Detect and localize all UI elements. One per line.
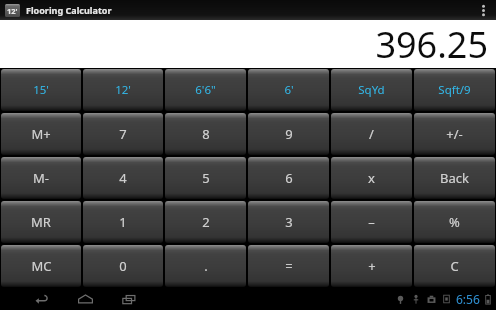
- button[interactable]: 7: [83, 113, 163, 155]
- staticText: 2: [202, 213, 210, 231]
- button[interactable]: 15': [1, 69, 81, 111]
- staticText: 0: [119, 257, 127, 275]
- staticText: Back: [440, 169, 469, 187]
- button[interactable]: –: [331, 201, 412, 243]
- button[interactable]: M+: [1, 113, 81, 155]
- staticText: 6:56: [456, 291, 480, 307]
- staticText: x: [368, 169, 375, 187]
- staticText: 12': [7, 6, 18, 16]
- staticText: =: [285, 257, 293, 275]
- staticText: 15': [33, 82, 49, 98]
- button[interactable]: SqYd: [331, 69, 412, 111]
- button[interactable]: +: [331, 245, 412, 287]
- button[interactable]: 5: [165, 157, 246, 199]
- button[interactable]: %: [414, 201, 495, 243]
- button[interactable]: 8: [165, 113, 246, 155]
- button[interactable]: M-: [1, 157, 81, 199]
- button[interactable]: +/-: [414, 113, 495, 155]
- staticText: 7: [119, 125, 127, 143]
- staticText: 6'6": [195, 82, 216, 98]
- button[interactable]: .: [165, 245, 246, 287]
- staticText: 8: [202, 125, 210, 143]
- staticText: 1: [119, 213, 127, 231]
- staticText: 9: [285, 125, 293, 143]
- button[interactable]: 6: [248, 157, 329, 199]
- staticText: 12': [115, 82, 131, 98]
- button[interactable]: 6': [248, 69, 329, 111]
- staticText: M-: [33, 169, 49, 187]
- button[interactable]: More options: [476, 0, 490, 20]
- staticText: MR: [31, 213, 51, 231]
- staticText: 396.25: [375, 20, 488, 67]
- staticText: 5: [202, 169, 210, 187]
- button[interactable]: 1: [83, 201, 163, 243]
- staticText: MC: [31, 257, 52, 275]
- staticText: 6': [284, 82, 294, 98]
- staticText: /: [369, 125, 374, 143]
- button[interactable]: Sqft/9: [414, 69, 495, 111]
- button[interactable]: 0: [83, 245, 163, 287]
- button[interactable]: Recent apps: [114, 288, 144, 310]
- staticText: 6: [285, 169, 293, 187]
- staticText: +: [368, 257, 376, 275]
- staticText: C: [450, 257, 459, 275]
- staticText: %: [449, 213, 460, 231]
- button[interactable]: C: [414, 245, 495, 287]
- staticText: 3: [285, 213, 293, 231]
- staticText: .: [204, 257, 208, 275]
- button[interactable]: 12': [83, 69, 163, 111]
- button[interactable]: 9: [248, 113, 329, 155]
- button[interactable]: x: [331, 157, 412, 199]
- staticText: –: [368, 213, 375, 231]
- staticText: SqYd: [358, 82, 385, 98]
- button[interactable]: Back: [414, 157, 495, 199]
- button[interactable]: /: [331, 113, 412, 155]
- button[interactable]: MC: [1, 245, 81, 287]
- button[interactable]: =: [248, 245, 329, 287]
- button[interactable]: 6'6": [165, 69, 246, 111]
- staticText: Sqft/9: [438, 82, 471, 98]
- button[interactable]: 3: [248, 201, 329, 243]
- staticText: M+: [31, 125, 51, 143]
- staticText: 4: [119, 169, 127, 187]
- staticText: Flooring Calculator: [26, 4, 112, 16]
- button[interactable]: MR: [1, 201, 81, 243]
- button[interactable]: 4: [83, 157, 163, 199]
- staticText: +/-: [446, 125, 463, 143]
- button[interactable]: 2: [165, 201, 246, 243]
- button[interactable]: Home: [70, 288, 100, 310]
- button[interactable]: Back: [26, 288, 56, 310]
